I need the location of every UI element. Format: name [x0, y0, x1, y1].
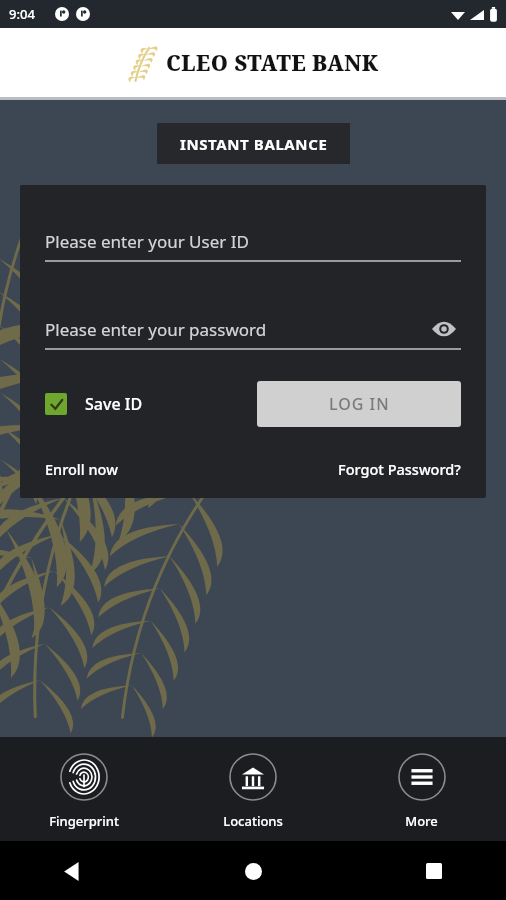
staticText: Forgot Password? — [338, 459, 461, 479]
staticText: More — [405, 812, 438, 830]
button[interactable]: Back — [52, 851, 92, 891]
staticText: Enroll now — [45, 459, 118, 479]
staticText: LOG IN — [329, 393, 390, 415]
staticText: Locations — [223, 812, 283, 830]
staticText: Please enter your User ID — [45, 230, 249, 253]
button[interactable]: Locations — [168, 737, 337, 841]
button[interactable]: Show password — [427, 312, 461, 346]
button[interactable]: Recents — [414, 851, 454, 891]
staticText: Save ID — [85, 393, 143, 415]
button[interactable]: LOG IN — [257, 381, 461, 427]
button[interactable]: Save ID — [45, 393, 143, 415]
button[interactable]: Fingerprint — [0, 737, 168, 841]
staticText: Please enter your password — [45, 318, 427, 341]
staticText: Fingerprint — [49, 812, 119, 830]
staticText: CLEO STATE BANK — [166, 49, 379, 78]
button[interactable]: Enroll now — [45, 459, 118, 479]
button[interactable]: Forgot Password? — [338, 459, 461, 479]
staticText: 9:04 — [9, 5, 35, 23]
button[interactable]: More — [337, 737, 506, 841]
staticText: INSTANT BALANCE — [180, 134, 328, 154]
button[interactable]: INSTANT BALANCE — [157, 123, 350, 164]
button[interactable]: Home — [233, 851, 273, 891]
